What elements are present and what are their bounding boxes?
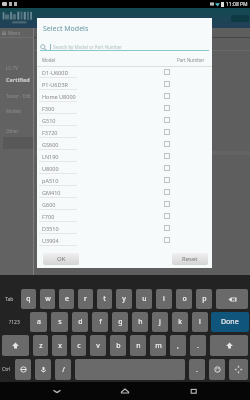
- staticText: D1-U600D: [42, 69, 69, 76]
- staticText: .: [196, 365, 198, 375]
- button[interactable]: U3904: [37, 234, 212, 246]
- button[interactable]: pA510: [37, 174, 212, 186]
- button[interactable]: i: [156, 289, 172, 309]
- button[interactable]: g: [112, 312, 128, 332]
- button[interactable]: Arrow keys: [229, 359, 248, 380]
- button[interactable]: Certified: [0, 74, 33, 85]
- button[interactable]: ,: [170, 335, 186, 356]
- staticText: LG TV: [6, 65, 18, 71]
- staticText: F700: [42, 213, 55, 220]
- button[interactable]: m: [150, 335, 166, 356]
- button[interactable]: U8000: [37, 162, 212, 174]
- button[interactable]: F700: [37, 210, 212, 222]
- staticText: F300: [42, 105, 55, 112]
- button[interactable]: Other: [0, 125, 33, 136]
- staticText: v: [96, 341, 100, 351]
- button[interactable]: a: [30, 312, 47, 332]
- button[interactable]: f: [92, 312, 108, 332]
- button[interactable]: q: [21, 289, 36, 309]
- button[interactable]: F300: [37, 102, 212, 114]
- button[interactable]: G510: [37, 114, 212, 126]
- button[interactable]: Search by Model or Part Number: [40, 42, 209, 52]
- button[interactable]: h: [132, 312, 148, 332]
- button[interactable]: l: [192, 312, 208, 332]
- button[interactable]: p: [196, 289, 212, 309]
- button[interactable]: Done: [211, 312, 249, 332]
- staticText: j: [159, 317, 161, 327]
- button[interactable]: Recent apps: [182, 382, 206, 400]
- staticText: U8000: [42, 165, 59, 172]
- button[interactable]: Back: [45, 382, 69, 400]
- button[interactable]: GS600: [37, 138, 212, 150]
- staticText: i: [163, 294, 165, 304]
- staticText: Select Models: [43, 24, 89, 34]
- staticText: Tab: [5, 296, 14, 303]
- staticText: G600: [42, 201, 56, 208]
- staticText: P1-U6D3R: [42, 81, 68, 88]
- button[interactable]: D1-U600D: [37, 66, 212, 78]
- button[interactable]: ?123: [0, 312, 28, 332]
- staticText: U3904: [42, 237, 59, 244]
- staticText: Model: [42, 57, 56, 63]
- button[interactable]: Emoji: [209, 359, 225, 380]
- staticText: Ctrl: [2, 366, 11, 373]
- button[interactable]: F3720: [37, 126, 212, 138]
- button[interactable]: s: [51, 312, 68, 332]
- button[interactable]: GM410: [37, 186, 212, 198]
- staticText: d: [78, 317, 83, 327]
- button[interactable]: LN190: [37, 150, 212, 162]
- button[interactable]: /: [55, 359, 71, 380]
- staticText: F3720: [42, 129, 58, 136]
- staticText: h: [138, 317, 143, 327]
- staticText: 11:08 PM: [226, 1, 248, 8]
- button[interactable]: G600: [37, 198, 212, 210]
- button[interactable]: u: [136, 289, 152, 309]
- button[interactable]: t: [97, 289, 112, 309]
- button[interactable]: e: [59, 289, 74, 309]
- button[interactable]: j: [152, 312, 168, 332]
- button[interactable]: Menu: [2, 29, 21, 37]
- staticText: D3510: [42, 225, 59, 232]
- button[interactable]: r: [78, 289, 93, 309]
- button[interactable]: o: [176, 289, 192, 309]
- button[interactable]: Tester - Edit: [0, 90, 33, 101]
- button[interactable]: Home: [113, 382, 137, 400]
- button[interactable]: .: [189, 359, 205, 380]
- button[interactable]: k: [172, 312, 188, 332]
- button[interactable]: P1-U6D3R: [37, 78, 212, 90]
- staticText: Part Number: [177, 57, 205, 63]
- button[interactable]: Backspace: [216, 289, 248, 309]
- button[interactable]: Models: [0, 105, 33, 116]
- staticText: GM410: [42, 189, 61, 196]
- staticText: z: [39, 341, 43, 351]
- button[interactable]: D3510: [37, 222, 212, 234]
- button[interactable]: b: [110, 335, 126, 356]
- button[interactable]: Ctrl: [0, 359, 13, 380]
- button[interactable]: Reset: [172, 253, 208, 265]
- staticText: Other: [6, 128, 19, 134]
- button[interactable]: .: [190, 335, 206, 356]
- button[interactable]: LG TV: [0, 62, 33, 73]
- button[interactable]: n: [130, 335, 146, 356]
- button[interactable]: Voice input: [35, 359, 51, 380]
- button[interactable]: w: [40, 289, 55, 309]
- button[interactable]: d: [72, 312, 88, 332]
- button[interactable]: x: [52, 335, 67, 356]
- button[interactable]: Home U8000: [37, 90, 212, 102]
- button[interactable]: Shift: [2, 335, 29, 356]
- button[interactable]: Language: [15, 359, 31, 380]
- staticText: pA510: [42, 177, 59, 184]
- staticText: OK: [57, 255, 66, 263]
- staticText: Done: [221, 317, 239, 327]
- button[interactable]: v: [90, 335, 106, 356]
- button[interactable]: z: [33, 335, 48, 356]
- button[interactable]: y: [116, 289, 132, 309]
- staticText: Reset: [182, 255, 198, 263]
- staticText: a: [37, 317, 41, 327]
- button[interactable]: c: [71, 335, 86, 356]
- button[interactable]: Tab: [0, 289, 19, 309]
- button[interactable]: Shift: [210, 335, 248, 356]
- button[interactable]: OK: [43, 253, 79, 265]
